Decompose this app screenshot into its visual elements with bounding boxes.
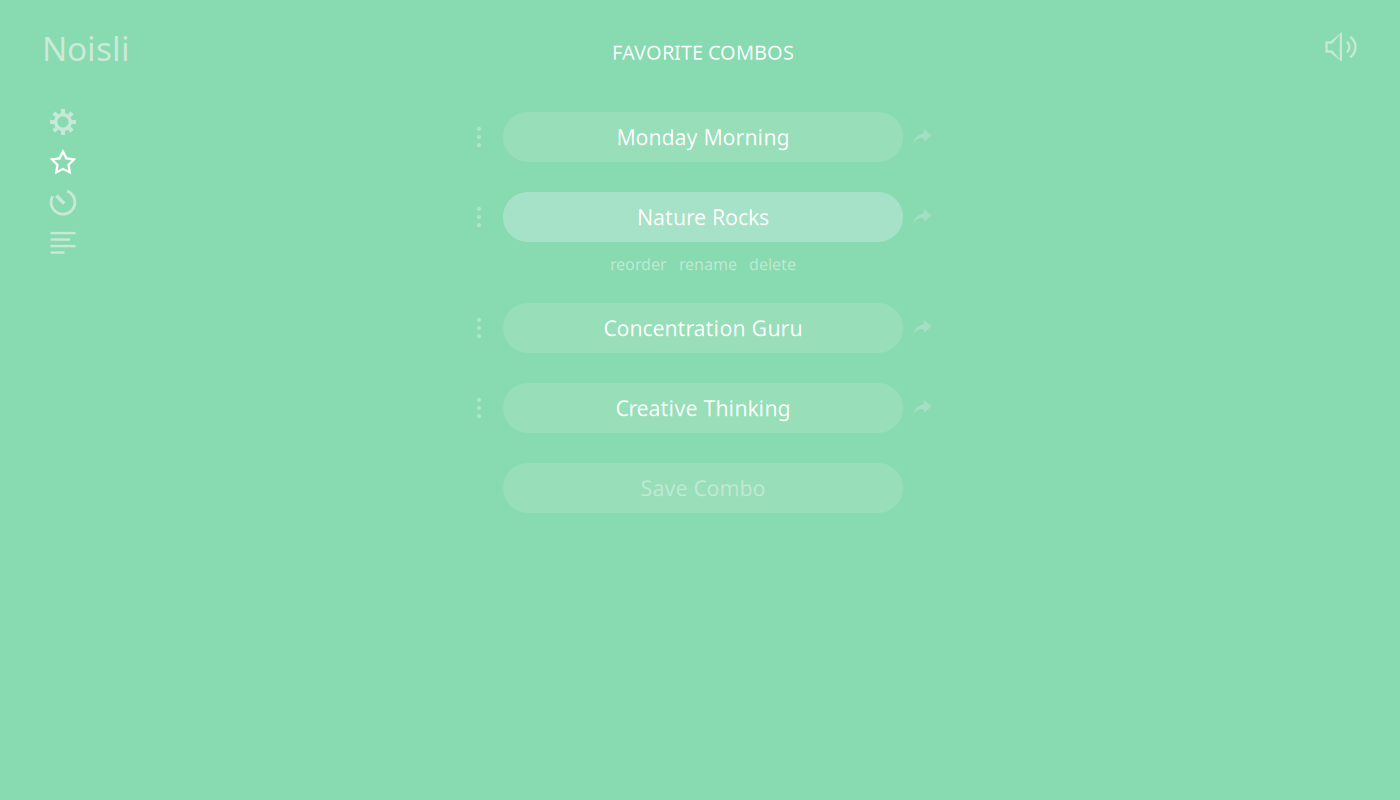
button[interactable]: Creative Thinking <box>503 383 903 433</box>
button[interactable]: Favorites <box>48 142 78 182</box>
button[interactable]: Settings <box>48 102 78 142</box>
button[interactable]: Share Creative Thinking <box>903 383 941 433</box>
button[interactable]: Reorder Nature Rocks <box>465 192 493 242</box>
staticText: reorder <box>610 253 667 275</box>
staticText: delete <box>749 253 796 275</box>
button[interactable]: rename <box>679 253 737 275</box>
button[interactable]: delete <box>749 253 796 275</box>
button[interactable]: reorder <box>610 253 667 275</box>
button[interactable]: Save Combo <box>503 463 903 513</box>
button[interactable]: Monday Morning <box>503 112 903 162</box>
button[interactable]: Reorder Monday Morning <box>465 112 493 162</box>
staticText: Noisli <box>42 26 130 70</box>
staticText: Creative Thinking <box>615 394 790 422</box>
staticText: FAVORITE COMBOS <box>612 39 794 65</box>
button[interactable]: Reorder Creative Thinking <box>465 383 493 433</box>
button[interactable]: Concentration Guru <box>503 303 903 353</box>
staticText: Nature Rocks <box>637 203 769 231</box>
button[interactable]: Share Monday Morning <box>903 112 941 162</box>
button[interactable]: Share Concentration Guru <box>903 303 941 353</box>
staticText: Monday Morning <box>616 123 789 151</box>
button[interactable]: Notes <box>48 222 78 262</box>
staticText: Concentration Guru <box>603 314 802 342</box>
button[interactable]: Timer <box>48 182 78 222</box>
button[interactable]: Share Nature Rocks <box>903 192 941 242</box>
staticText: rename <box>679 253 737 275</box>
button[interactable]: Sound settings <box>1322 27 1362 67</box>
button[interactable]: Reorder Concentration Guru <box>465 303 493 353</box>
staticText: Save Combo <box>640 474 765 502</box>
button[interactable]: Nature Rocks <box>503 192 903 242</box>
